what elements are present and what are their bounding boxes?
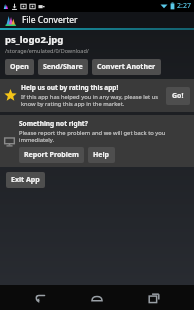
button[interactable]: Report Problem: [19, 147, 84, 163]
staticText: If this app has helped you in any way, p…: [21, 93, 162, 108]
staticText: File Converter: [22, 14, 78, 26]
staticText: Help us out by rating this app!: [21, 83, 119, 92]
button[interactable]: Help: [88, 147, 115, 163]
button[interactable]: Go!: [166, 87, 190, 105]
button[interactable]: Convert Another: [92, 59, 161, 75]
staticText: /storage/emulated/0/Download/: [5, 47, 89, 54]
staticText: Please report the problem and we will ge…: [19, 129, 190, 144]
staticText: Exit App: [11, 175, 40, 185]
other: Report a problem: [4, 136, 15, 147]
staticText: Convert Another: [97, 62, 156, 72]
staticText: Open: [10, 62, 29, 72]
button[interactable]: Home: [80, 285, 114, 310]
staticText: Help: [93, 150, 110, 160]
staticText: ps_logo2.jpg: [5, 33, 64, 46]
button[interactable]: Send/Share: [38, 59, 88, 75]
button[interactable]: Exit App: [6, 172, 45, 188]
button[interactable]: Recent apps: [137, 285, 171, 310]
staticText: Something not right?: [19, 119, 88, 128]
button[interactable]: Open: [5, 59, 34, 75]
staticText: Go!: [172, 91, 184, 101]
staticText: Report Problem: [24, 150, 79, 160]
staticText: Send/Share: [43, 62, 83, 72]
button[interactable]: Help us out by rating this app!: [0, 79, 194, 112]
button[interactable]: Back: [23, 285, 57, 310]
staticText: 2:27: [177, 1, 191, 11]
